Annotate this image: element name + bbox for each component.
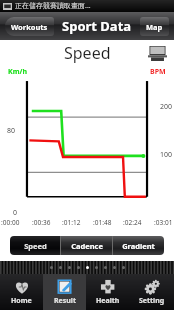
staticText: Map xyxy=(146,22,163,32)
staticText: Workouts xyxy=(11,22,48,32)
staticText: :02:24 xyxy=(123,218,142,227)
staticText: Speed xyxy=(24,241,47,251)
button[interactable]: Result xyxy=(43,274,86,310)
staticText: 0 xyxy=(13,208,18,218)
button[interactable]: Gradient xyxy=(113,236,164,255)
staticText: :00:36 xyxy=(32,218,51,227)
staticText: :00:00 xyxy=(1,218,20,227)
button[interactable]: Speed xyxy=(10,236,60,255)
button[interactable]: Map xyxy=(140,17,169,36)
button[interactable]: Workouts xyxy=(5,17,54,36)
button[interactable]: Health xyxy=(86,274,130,310)
staticText: Result xyxy=(54,296,76,306)
staticText: :03:01 xyxy=(154,218,173,227)
staticText: Km/h xyxy=(8,67,27,77)
staticText: 200 xyxy=(160,102,173,112)
staticText: 80 xyxy=(7,126,16,136)
staticText: Home xyxy=(11,296,32,306)
staticText: :01:48 xyxy=(93,218,112,227)
staticText: Health xyxy=(96,296,120,306)
staticText: BPM xyxy=(150,67,166,77)
staticText: 100 xyxy=(160,150,173,160)
button[interactable]: Chart view xyxy=(148,46,167,61)
staticText: Cadence xyxy=(71,241,103,251)
staticText: Gradient xyxy=(122,241,155,251)
staticText: Setting xyxy=(139,296,165,306)
staticText: 正在儲存競賽讀取畫面... xyxy=(15,1,91,11)
staticText: Speed xyxy=(64,42,111,64)
button[interactable]: Home xyxy=(0,274,43,310)
staticText: Sport Data xyxy=(62,17,132,35)
staticText: :01:12 xyxy=(62,218,81,227)
button[interactable]: Setting xyxy=(130,274,174,310)
button[interactable]: Cadence xyxy=(61,236,112,255)
